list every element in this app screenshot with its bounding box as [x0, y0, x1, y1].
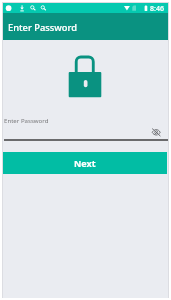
staticText: Enter Password — [8, 21, 77, 34]
button[interactable]: Toggle password visibility — [150, 126, 162, 138]
button[interactable]: Next — [3, 152, 167, 174]
staticText: Enter Password — [4, 116, 49, 124]
staticText: 8:46 — [150, 4, 164, 14]
staticText: Next — [74, 157, 96, 169]
